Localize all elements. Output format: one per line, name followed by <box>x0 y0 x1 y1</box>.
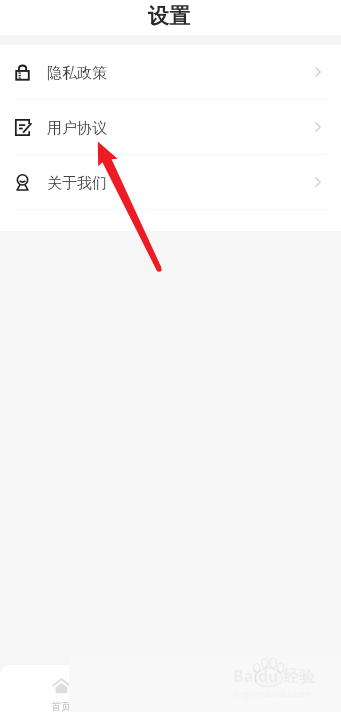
button[interactable]: 隐私政策 <box>0 45 341 99</box>
button[interactable]: 用户协议 <box>0 100 341 154</box>
staticText: 用户协议 <box>47 119 107 138</box>
staticText: 关于我们 <box>47 174 107 193</box>
staticText: 隐私政策 <box>47 64 107 83</box>
button[interactable]: 首页 <box>5 665 117 712</box>
staticText: Baidu 经验 <box>233 665 315 687</box>
staticText: 首页 <box>51 700 71 712</box>
button[interactable]: 我的 <box>229 665 341 712</box>
button[interactable]: 关于我们 <box>0 155 341 209</box>
staticText: 设置 <box>148 3 190 29</box>
